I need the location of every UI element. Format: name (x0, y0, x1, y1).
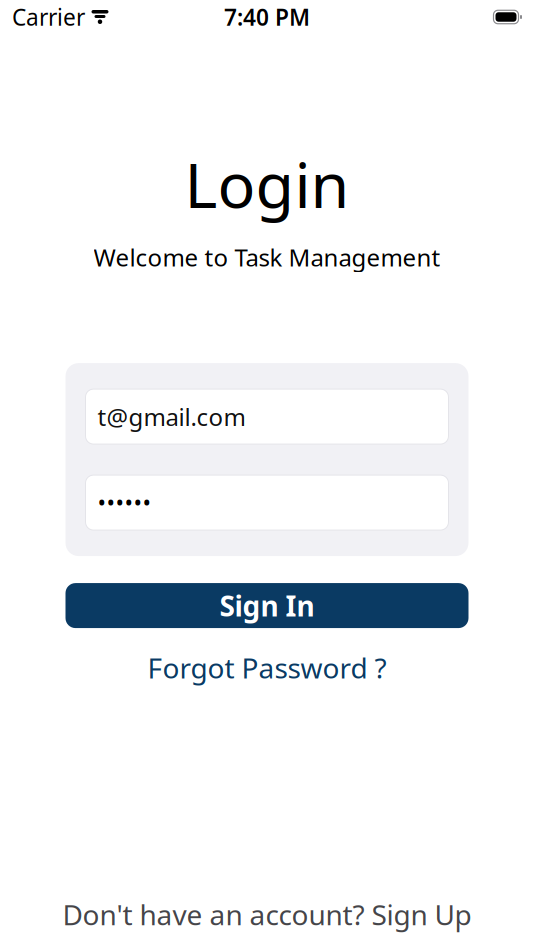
button[interactable]: Sign In (65, 583, 468, 628)
staticText: Don't have an account? Sign Up (62, 896, 471, 933)
staticText: t@gmail.com (97, 401, 245, 433)
button[interactable]: Don't have an account? Sign Up (46, 889, 487, 940)
staticText: Carrier (12, 2, 85, 32)
staticText: 7:40 PM (224, 2, 310, 32)
staticText: Welcome to Task Management (93, 241, 440, 273)
staticText: Login (184, 142, 349, 225)
button[interactable]: Forgot Password ? (135, 642, 398, 693)
staticText: Forgot Password ? (147, 649, 386, 686)
staticText: •••••• (97, 487, 151, 518)
staticText: Sign In (219, 587, 314, 624)
